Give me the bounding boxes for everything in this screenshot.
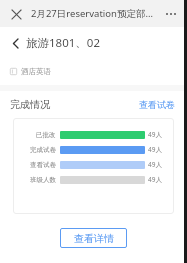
staticText: 查看详情 xyxy=(74,232,114,245)
button[interactable]: 查看详情 xyxy=(60,228,127,248)
staticText: 完成情况 xyxy=(10,98,50,111)
staticText: 49人 xyxy=(148,175,162,184)
staticText: 旅游1801、02 xyxy=(26,35,100,51)
staticText: 查看试卷 xyxy=(139,99,175,110)
staticText: 已批改 xyxy=(36,131,56,139)
button[interactable]: Close xyxy=(6,4,26,24)
button[interactable]: 旅游1801、02 xyxy=(0,27,187,59)
button[interactable]: More options xyxy=(161,4,181,24)
staticText: 酒店英语 xyxy=(21,67,51,76)
staticText: 49人 xyxy=(148,130,162,139)
button[interactable]: 查看试卷 xyxy=(137,97,177,112)
staticText: 完成试卷 xyxy=(30,146,56,154)
staticText: 2月27日reservation预定部… xyxy=(31,7,153,20)
staticText: 班级人数 xyxy=(30,176,56,184)
staticText: 49人 xyxy=(148,145,162,154)
staticText: 查看试卷 xyxy=(30,161,56,169)
staticText: 49人 xyxy=(148,160,162,169)
